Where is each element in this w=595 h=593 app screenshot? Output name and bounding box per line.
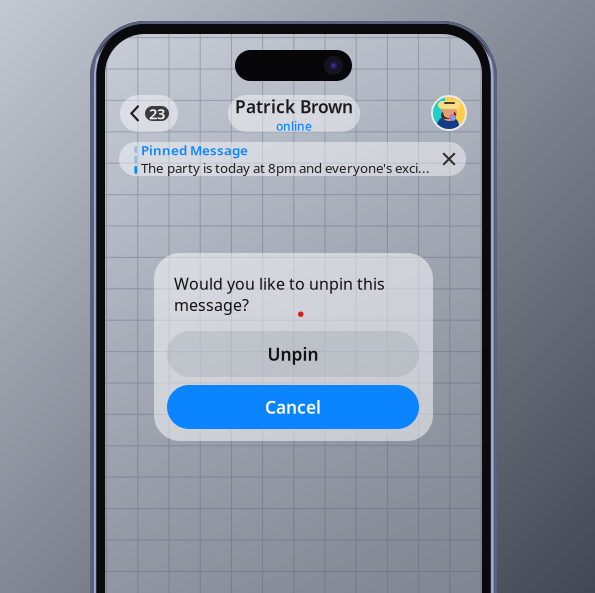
button[interactable]: Dismiss pinned message <box>433 143 465 175</box>
staticText: Cancel <box>265 395 321 418</box>
button[interactable]: Patrick Brown <box>228 95 360 132</box>
staticText: Patrick Brown <box>235 95 353 118</box>
button[interactable]: Back, 23 conversations <box>120 95 178 132</box>
button[interactable]: Patrick Brown profile photo <box>431 95 467 131</box>
staticText: 23 <box>149 104 165 123</box>
staticText: The party is today at 8pm and everyone's… <box>141 159 430 177</box>
button[interactable]: Unpin <box>167 331 419 377</box>
staticText: online <box>276 118 312 134</box>
staticText: Unpin <box>267 342 318 365</box>
button[interactable]: Cancel <box>167 385 419 429</box>
staticText: Would you like to unpin this message? <box>174 273 385 315</box>
staticText: Pinned Message <box>141 141 248 159</box>
